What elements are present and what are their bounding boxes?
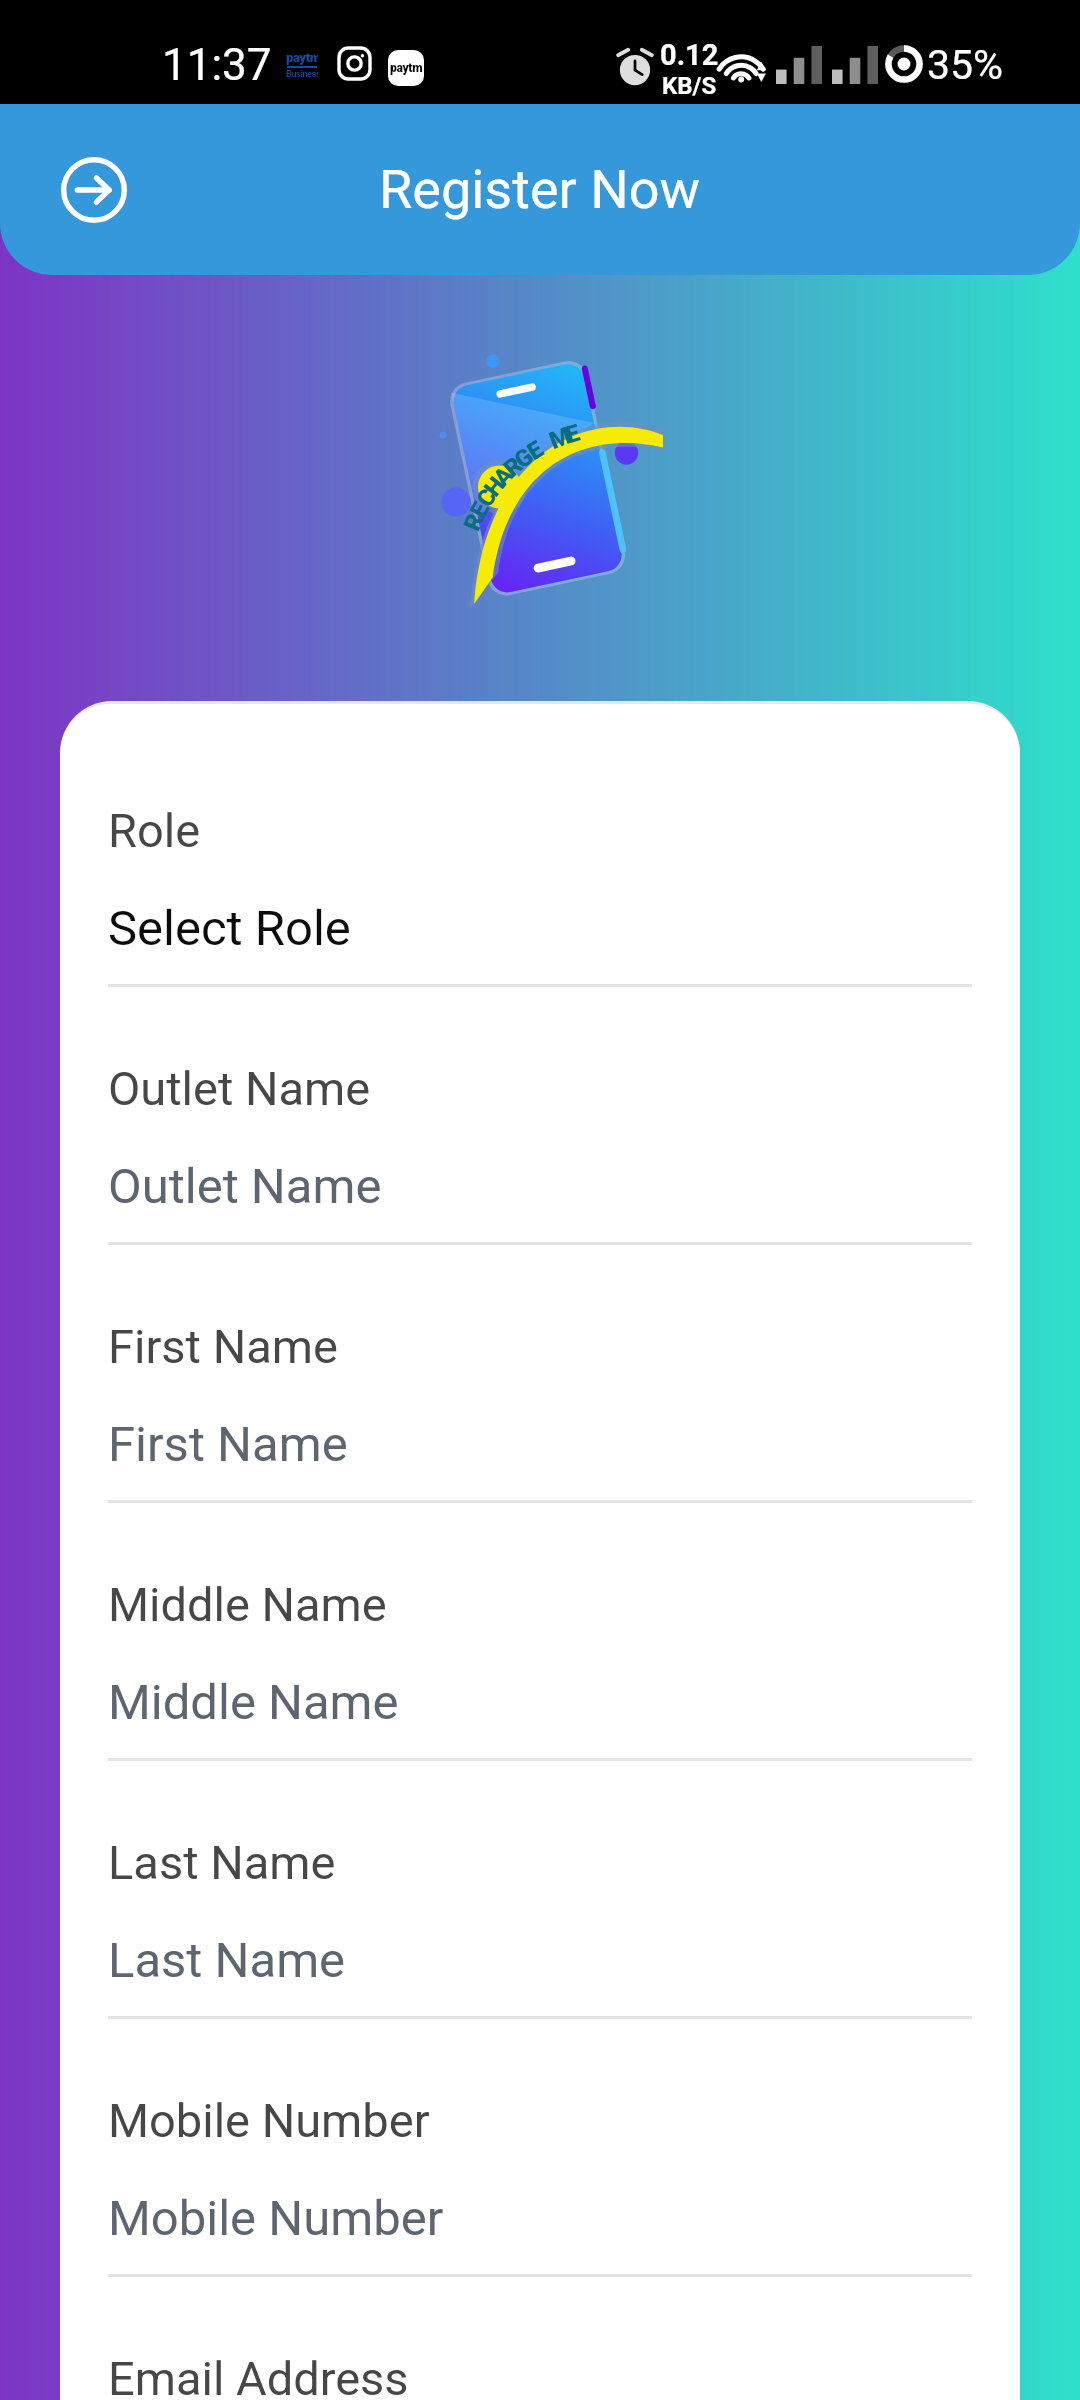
button[interactable]: First Name [108,1245,972,1503]
staticText: First Name [108,1319,338,1374]
staticText: 0.12 [660,38,719,72]
staticText: paytm [390,61,423,75]
staticText: Select Role [108,900,351,957]
staticText: Email Address [108,2351,409,2400]
staticText: Business [286,69,318,80]
staticText: KB/S [662,72,717,100]
staticText: Middle Name [108,1674,399,1731]
button[interactable]: Email Address [108,2277,972,2400]
staticText: Mobile Number [108,2093,430,2148]
staticText: Middle Name [108,1577,387,1632]
staticText: First Name [108,1416,348,1473]
staticText: 11:37 [162,39,272,91]
staticText: Role [108,803,201,858]
button[interactable]: Last Name [108,1761,972,2019]
button[interactable]: Back [32,128,156,252]
button[interactable]: Middle Name [108,1503,972,1761]
button[interactable]: Mobile Number [108,2019,972,2277]
staticText: Outlet Name [108,1061,371,1116]
button[interactable]: Outlet Name [108,987,972,1245]
staticText: Mobile Number [108,2190,444,2247]
staticText: Last Name [108,1932,346,1989]
staticText: paytm [286,50,318,65]
staticText: Last Name [108,1835,336,1890]
staticText: Register Now [379,158,701,221]
staticText: Outlet Name [108,1158,382,1215]
button[interactable]: Role [108,704,972,987]
staticText: 35% [927,41,1004,89]
